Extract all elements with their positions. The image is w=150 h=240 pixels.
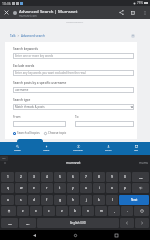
- button[interactable]: t: [54, 183, 66, 193]
- button[interactable]: Talk: [134, 142, 138, 155]
- button[interactable]: Choose topic: [44, 131, 67, 135]
- staticText: n: [87, 209, 89, 213]
- staticText: Talk: [2, 157, 6, 160]
- button[interactable]: w: [15, 183, 27, 193]
- button[interactable]: Home: [68, 230, 82, 240]
- button[interactable]: Share: [115, 6, 127, 19]
- staticText: ADVERTISEMENT: [66, 21, 84, 24]
- button[interactable]: y: [67, 183, 79, 193]
- button[interactable]: g: [54, 195, 66, 205]
- button[interactable]: v: [56, 206, 68, 216]
- button[interactable]: p: [119, 183, 131, 193]
- button[interactable]: q: [1, 183, 14, 193]
- button[interactable]: Download page: [127, 6, 139, 19]
- button[interactable]: k: [93, 195, 105, 205]
- staticText: !#1: [26, 222, 30, 225]
- button[interactable]: c: [43, 206, 55, 216]
- button[interactable]: Active: [43, 142, 50, 155]
- button[interactable]: 9: [106, 172, 118, 182]
- staticText: Choose topic: [48, 131, 67, 135]
- staticText: mumsnet.com: [19, 14, 37, 18]
- button[interactable]: d: [28, 195, 40, 205]
- button[interactable]: j: [80, 195, 92, 205]
- button[interactable]: username: [13, 87, 134, 93]
- button[interactable]: Del: [132, 172, 149, 182]
- staticText: To:: [75, 115, 80, 119]
- button[interactable]: .: [121, 206, 133, 216]
- button[interactable]: Move cursor right: [135, 218, 149, 228]
- button[interactable]: mumsnet: [66, 161, 81, 165]
- button[interactable]: ,: [108, 206, 120, 216]
- button[interactable]: Move cursor left: [120, 218, 134, 228]
- button[interactable]: l: [106, 195, 118, 205]
- staticText: i: [99, 186, 100, 190]
- staticText: 2: [20, 175, 22, 179]
- button[interactable]: n: [82, 206, 94, 216]
- button[interactable]: 3: [28, 172, 40, 182]
- button[interactable]: I'm on: [105, 142, 112, 155]
- button[interactable]: mums: [139, 161, 148, 165]
- button[interactable]: 2: [15, 172, 27, 182]
- staticText: Del: [139, 176, 143, 179]
- button[interactable]: [75, 121, 134, 127]
- button[interactable]: Emoji: [134, 206, 149, 216]
- button[interactable]: More options: [139, 6, 150, 19]
- button[interactable]: Watching: [73, 142, 83, 155]
- button[interactable]: Shift: [1, 206, 16, 216]
- button[interactable]: z: [17, 206, 29, 216]
- button[interactable]: English (UK): [37, 218, 119, 228]
- button[interactable]: b: [69, 206, 81, 216]
- button[interactable]: Search all topics: [13, 131, 40, 135]
- button[interactable]: 1: [1, 172, 14, 182]
- button[interactable]: Talk: [10, 34, 16, 38]
- staticText: j: [86, 198, 87, 202]
- button[interactable]: e: [28, 183, 40, 193]
- staticText: From:: [13, 115, 22, 119]
- button[interactable]: u: [80, 183, 92, 193]
- staticText: t: [59, 186, 61, 190]
- button[interactable]: m: [95, 206, 107, 216]
- button[interactable]: i: [93, 183, 105, 193]
- button[interactable]: Clipboard: [0, 156, 8, 161]
- button[interactable]: 7: [80, 172, 92, 182]
- staticText: h: [72, 198, 74, 202]
- button[interactable]: s: [15, 195, 27, 205]
- button[interactable]: r: [41, 183, 53, 193]
- staticText: 75%: [137, 1, 143, 5]
- button[interactable]: Back: [27, 230, 41, 240]
- button[interactable]: Account: [130, 33, 136, 39]
- button[interactable]: Next: [119, 195, 149, 205]
- button[interactable]: 4: [41, 172, 53, 182]
- button[interactable]: Search: [17, 139, 43, 145]
- button[interactable]: Advanced search: [21, 34, 45, 38]
- button[interactable]: Match threads & posts: [13, 104, 134, 110]
- button[interactable]: Enter any key words you want excluded fr…: [13, 70, 134, 76]
- button[interactable]: 5: [54, 172, 66, 182]
- button[interactable]: Recent apps: [109, 230, 123, 240]
- button[interactable]: f: [41, 195, 53, 205]
- staticText: Search all topics: [17, 131, 40, 135]
- button[interactable]: Close: [0, 6, 12, 19]
- button[interactable]: 8: [93, 172, 105, 182]
- button[interactable]: o: [106, 183, 118, 193]
- staticText: 7: [85, 175, 87, 179]
- button[interactable]: 6: [67, 172, 79, 182]
- button[interactable]: a: [1, 195, 14, 205]
- button[interactable]: !#1: [19, 218, 36, 228]
- button[interactable]: 0: [119, 172, 131, 182]
- button[interactable]: Search: [14, 142, 21, 155]
- staticText: q: [7, 186, 9, 190]
- staticText: Match threads & posts: [15, 105, 131, 109]
- button[interactable]: Backspace: [132, 183, 149, 193]
- staticText: z: [22, 209, 24, 213]
- button[interactable]: Enter one or more key words: [13, 53, 134, 59]
- button[interactable]: Previous suggestions: [2, 159, 8, 167]
- button[interactable]: [13, 121, 66, 127]
- button[interactable]: Ctrl: [1, 218, 18, 228]
- button[interactable]: x: [30, 206, 42, 216]
- staticText: 1: [7, 175, 9, 179]
- staticText: Talk: [134, 149, 138, 152]
- button[interactable]: h: [67, 195, 79, 205]
- staticText: p: [124, 186, 126, 190]
